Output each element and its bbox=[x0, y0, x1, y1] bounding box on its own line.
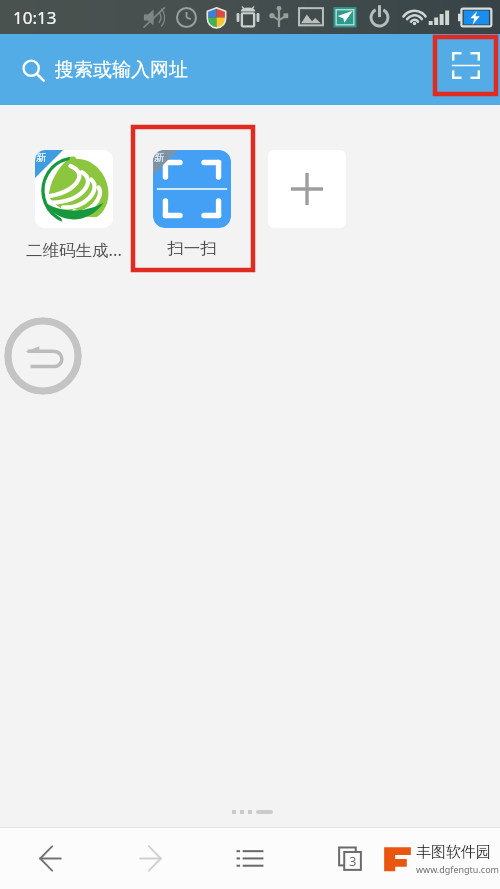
staticText: 丰图软件园 bbox=[416, 843, 491, 862]
staticText: 二维码生成... bbox=[26, 238, 122, 261]
button[interactable]: Forward bbox=[100, 828, 200, 889]
staticText: 新 bbox=[36, 151, 46, 164]
button[interactable]: Scan bbox=[435, 37, 496, 94]
staticText: 新 bbox=[154, 151, 164, 164]
button[interactable]: 新 bbox=[153, 150, 231, 228]
button[interactable]: Back bbox=[4, 317, 82, 395]
button[interactable]: Menu bbox=[200, 828, 300, 889]
button[interactable]: Tabs bbox=[300, 828, 400, 889]
button[interactable]: Add shortcut bbox=[268, 150, 346, 228]
button[interactable]: 新 bbox=[35, 150, 113, 228]
staticText: www.dgfengtu.com bbox=[416, 863, 500, 875]
staticText: 3 bbox=[349, 852, 357, 870]
button[interactable]: 搜索或输入网址 bbox=[22, 58, 188, 82]
staticText: 搜索或输入网址 bbox=[55, 58, 188, 82]
staticText: 10:13 bbox=[13, 6, 57, 29]
staticText: 扫一扫 bbox=[167, 238, 217, 259]
button[interactable]: Back bbox=[0, 828, 100, 889]
